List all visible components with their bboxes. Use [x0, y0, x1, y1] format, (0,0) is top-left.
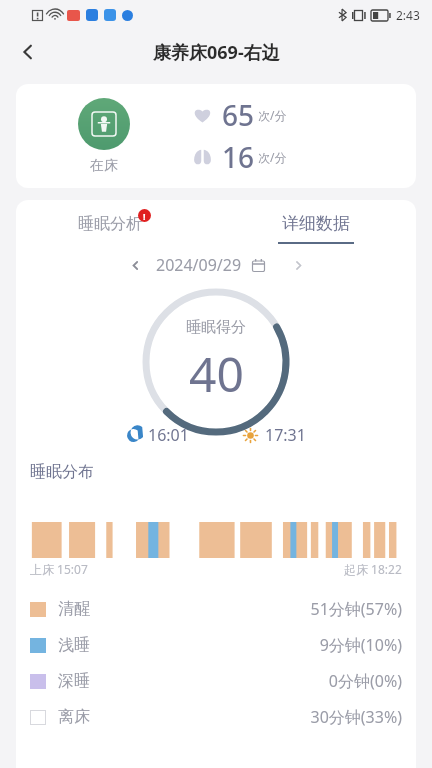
- staticText: 0分钟(0%): [328, 670, 402, 692]
- staticText: 2024/09/29: [156, 254, 242, 276]
- staticText: 详细数据: [282, 213, 350, 234]
- staticText: 深睡: [58, 671, 90, 691]
- button[interactable]: Back: [10, 34, 46, 70]
- staticText: 睡眠分布: [30, 462, 94, 482]
- staticText: 51分钟(57%): [310, 598, 402, 620]
- staticText: 65: [222, 96, 255, 134]
- staticText: 次/分: [258, 107, 287, 123]
- button[interactable]: 详细数据: [216, 200, 416, 248]
- button[interactable]: Previous day: [120, 250, 150, 280]
- staticText: 17:31: [265, 424, 306, 446]
- staticText: !: [143, 210, 146, 222]
- staticText: 9分钟(10%): [319, 634, 402, 656]
- button[interactable]: Pick date: [247, 254, 269, 276]
- staticText: 16: [222, 138, 255, 176]
- button[interactable]: Next day: [283, 250, 313, 280]
- staticText: 16:01: [148, 424, 189, 446]
- staticText: 离床: [58, 707, 90, 727]
- staticText: 2:43: [396, 7, 420, 23]
- button[interactable]: 深睡: [16, 663, 416, 699]
- staticText: 上床 15:07: [30, 561, 88, 577]
- button[interactable]: 清醒: [16, 591, 416, 627]
- button[interactable]: 浅睡: [16, 627, 416, 663]
- staticText: 康养床069-右边: [153, 40, 280, 65]
- staticText: 清醒: [58, 599, 90, 619]
- staticText: 40: [189, 341, 244, 406]
- staticText: 起床 18:22: [344, 561, 402, 577]
- button[interactable]: 离床: [16, 699, 416, 735]
- button[interactable]: 睡眠分析: [16, 200, 216, 248]
- staticText: 次/分: [258, 149, 287, 165]
- staticText: 在床: [90, 157, 118, 175]
- staticText: 睡眠得分: [186, 318, 246, 337]
- staticText: 浅睡: [58, 635, 90, 655]
- staticText: 睡眠分析: [78, 214, 142, 234]
- other: In bed: [78, 98, 130, 150]
- staticText: 30分钟(33%): [310, 706, 402, 728]
